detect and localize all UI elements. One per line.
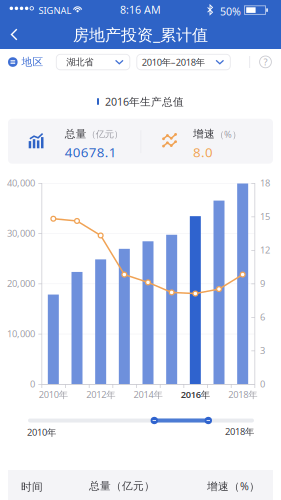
- staticText: 时间: [21, 480, 43, 494]
- staticText: 2016年: [181, 388, 210, 401]
- button[interactable]: 地区: [0, 49, 51, 75]
- button[interactable]: Range start: [151, 417, 158, 424]
- staticText: 40678.1: [65, 143, 117, 161]
- staticText: 30,000: [7, 227, 35, 239]
- staticText: （亿元）: [87, 128, 123, 140]
- staticText: 8.0: [193, 143, 213, 161]
- staticText: 8:16 AM: [120, 3, 161, 17]
- staticText: 增速（%）: [207, 479, 260, 493]
- staticText: 地区: [22, 55, 44, 69]
- staticText: 总量（亿元）: [89, 479, 155, 492]
- button[interactable]: Range end: [205, 417, 212, 424]
- staticText: 12: [260, 244, 270, 256]
- staticText: 2012年: [86, 388, 115, 401]
- button[interactable]: 湖北省: [56, 54, 130, 70]
- staticText: 2010年: [39, 388, 68, 401]
- staticText: 18: [260, 177, 270, 189]
- staticText: 50%: [220, 4, 241, 18]
- staticText: 增速: [193, 127, 215, 141]
- staticText: 2010年–2018年: [142, 56, 205, 68]
- staticText: 40,000: [7, 177, 35, 189]
- staticText: 2014年: [133, 388, 162, 401]
- button[interactable]: 2010年–2018年: [137, 54, 230, 70]
- staticText: 湖北省: [66, 56, 93, 68]
- staticText: 0: [260, 378, 265, 390]
- staticText: SIGNAL: [38, 4, 71, 16]
- staticText: 总量: [65, 127, 87, 141]
- staticText: 6: [260, 311, 265, 323]
- staticText: 10,000: [7, 327, 35, 340]
- staticText: 2018年: [225, 425, 254, 438]
- staticText: 2010年: [27, 426, 56, 438]
- staticText: 2018年: [228, 388, 257, 401]
- button[interactable]: Back: [0, 20, 30, 49]
- staticText: 9: [260, 277, 265, 289]
- staticText: 20,000: [7, 277, 35, 289]
- staticText: 15: [260, 210, 270, 222]
- staticText: 0: [30, 378, 35, 390]
- staticText: 房地产投资_累计值: [73, 24, 208, 45]
- staticText: 3: [260, 344, 265, 356]
- staticText: ?: [263, 56, 267, 68]
- staticText: （%）: [215, 128, 241, 140]
- button[interactable]: Help: [251, 49, 280, 75]
- staticText: 2016年生产总值: [105, 94, 184, 109]
